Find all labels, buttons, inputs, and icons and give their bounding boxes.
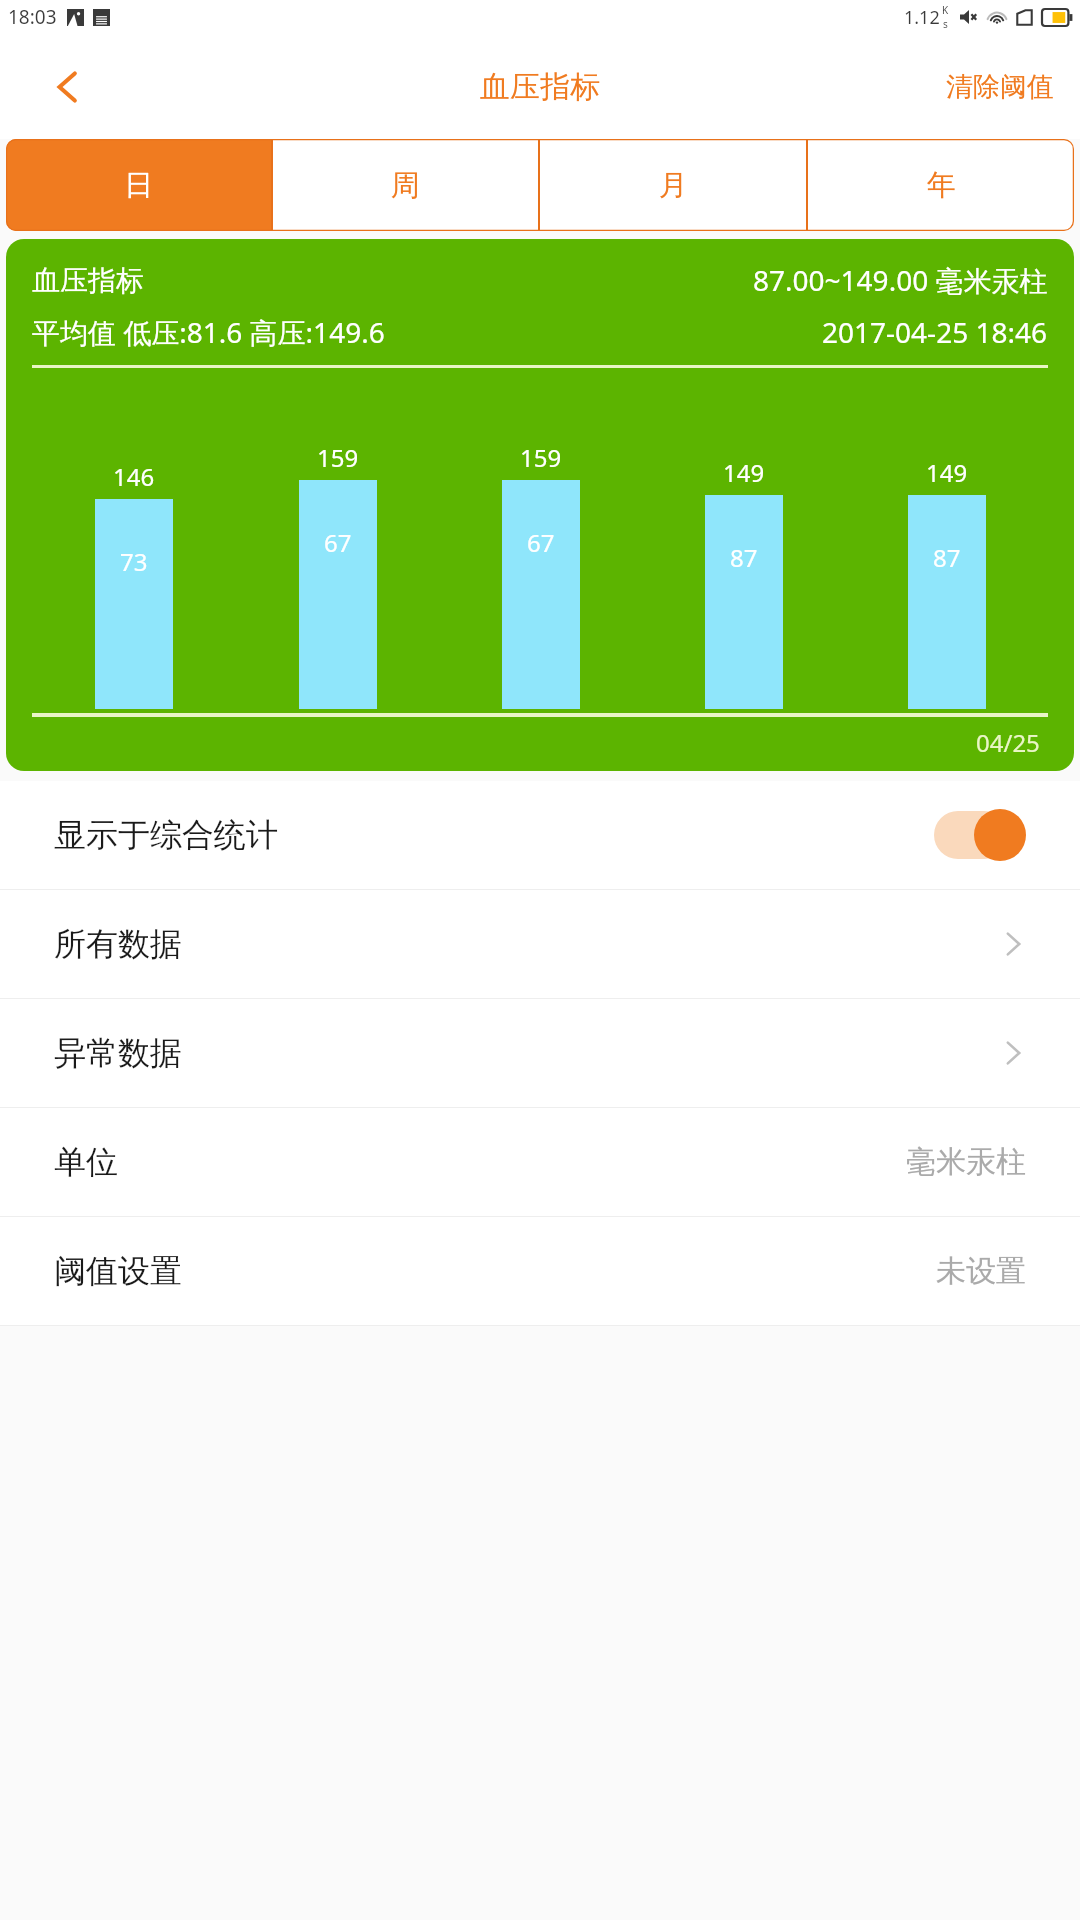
staticText: 159 — [520, 441, 562, 474]
staticText: 18:03 — [8, 4, 57, 30]
staticText: 未设置 — [936, 1252, 1026, 1290]
staticText: 149 — [926, 456, 968, 489]
staticText: 异常数据 — [54, 1033, 182, 1073]
staticText: 年 — [927, 167, 956, 204]
button[interactable]: Toggle show in statistics — [930, 809, 1026, 861]
staticText: 146 — [113, 460, 155, 493]
button[interactable]: 单位 — [0, 1108, 1080, 1216]
staticText: 87 — [730, 541, 758, 574]
staticText: s — [943, 17, 948, 31]
button[interactable]: 日 — [6, 139, 271, 231]
staticText: 血压指标 — [480, 68, 600, 106]
button[interactable]: 年 — [808, 139, 1074, 231]
button[interactable]: 所有数据 — [0, 890, 1080, 998]
button[interactable]: 清除阈值 — [920, 56, 1080, 118]
staticText: 毫米汞柱 — [906, 1143, 1026, 1181]
staticText: 月 — [659, 167, 688, 204]
button[interactable]: 周 — [273, 139, 538, 231]
button[interactable]: 月 — [540, 139, 806, 231]
staticText: 87.00~149.00 毫米汞柱 — [753, 261, 1048, 299]
staticText: 日 — [124, 167, 153, 204]
staticText: 平均值 低压:81.6 高压:149.6 — [32, 313, 385, 351]
button[interactable]: 阈值设置 — [0, 1217, 1080, 1325]
staticText: 清除阈值 — [946, 70, 1054, 104]
staticText: 159 — [317, 441, 359, 474]
button[interactable]: 显示于综合统计 — [0, 781, 1080, 889]
button[interactable]: 异常数据 — [0, 999, 1080, 1107]
staticText: 73 — [120, 545, 148, 578]
staticText: 04/25 — [976, 726, 1040, 759]
staticText: 2017-04-25 18:46 — [822, 313, 1048, 351]
staticText: K — [942, 3, 949, 17]
staticText: 阈值设置 — [54, 1251, 182, 1291]
staticText: 67 — [527, 526, 555, 559]
staticText: 67 — [324, 526, 352, 559]
staticText: 单位 — [54, 1142, 118, 1182]
staticText: 血压指标 — [32, 263, 144, 298]
staticText: 所有数据 — [54, 924, 182, 964]
staticText: 87 — [933, 541, 961, 574]
staticText: 1.12 — [904, 5, 940, 30]
button[interactable]: Back — [40, 59, 96, 115]
staticText: 周 — [391, 167, 420, 204]
staticText: 149 — [723, 456, 765, 489]
staticText: 显示于综合统计 — [54, 815, 278, 855]
